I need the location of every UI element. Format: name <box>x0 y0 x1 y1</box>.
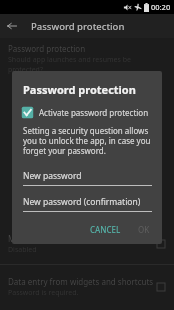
button[interactable]: OK <box>134 221 154 238</box>
staticText: New password <box>23 170 82 182</box>
button[interactable]: New password <box>12 170 162 186</box>
staticText: My templates <box>8 233 59 244</box>
button[interactable]: CANCEL <box>86 221 125 238</box>
staticText: Password protection <box>23 82 136 97</box>
staticText: Disabled <box>8 245 37 255</box>
button[interactable]: Password protection <box>0 38 174 80</box>
staticText: New password (confirmation) <box>23 196 141 208</box>
button[interactable]: New password (confirmation) <box>12 196 162 212</box>
staticText: Should app launches and resumes be prote… <box>8 55 166 75</box>
staticText: Password protection <box>31 20 125 33</box>
staticText: OK <box>138 224 150 235</box>
staticText: CANCEL <box>90 224 121 235</box>
staticText: Data entry from widgets and shortcuts <box>8 276 154 287</box>
button[interactable]: Activate password protection <box>12 106 162 119</box>
staticText: Password is required. <box>8 288 79 298</box>
staticText: 00:20 <box>151 2 171 12</box>
button[interactable]: Back <box>0 14 24 38</box>
button[interactable]: Data entry from widgets and shortcuts <box>0 272 174 302</box>
button[interactable]: My templates <box>0 229 174 259</box>
staticText: Activate password protection <box>39 107 149 118</box>
staticText: Password protection <box>8 43 86 54</box>
staticText: Setting a security question allows you t… <box>23 125 152 156</box>
